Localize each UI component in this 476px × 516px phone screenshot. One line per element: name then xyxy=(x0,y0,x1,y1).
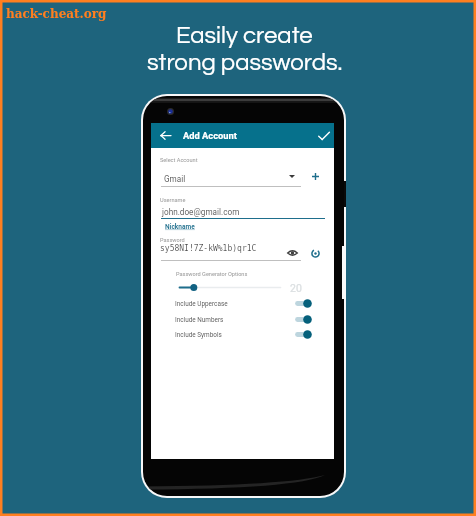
staticText: Password xyxy=(160,237,185,244)
staticText: Easily create xyxy=(176,23,313,48)
button[interactable]: Include Symbols xyxy=(151,327,334,342)
button[interactable]: Nickname xyxy=(165,223,195,231)
staticText: hack-cheat.org xyxy=(6,7,107,21)
staticText: sy58NI!7Z-kW%1b)qr1C xyxy=(160,244,257,253)
button[interactable]: Save xyxy=(315,127,332,144)
button[interactable]: Show password xyxy=(283,245,299,261)
button[interactable]: Include Numbers xyxy=(151,312,334,327)
staticText: Select Account xyxy=(160,157,198,164)
staticText: john.doe@gmail.com xyxy=(162,207,240,217)
staticText: Include Numbers xyxy=(175,316,224,324)
button[interactable]: Include Uppercase xyxy=(151,296,334,311)
button[interactable]: Regenerate password xyxy=(306,246,322,262)
staticText: Include Symbols xyxy=(175,331,222,339)
staticText: Gmail xyxy=(164,174,186,184)
button[interactable]: Password length xyxy=(176,282,281,294)
button[interactable]: Add account xyxy=(306,170,322,186)
staticText: Password Generator Options xyxy=(176,271,248,278)
staticText: Include Uppercase xyxy=(175,300,228,308)
staticText: Username xyxy=(160,197,186,204)
button[interactable]: Back xyxy=(157,127,174,144)
staticText: Add Account xyxy=(183,130,237,141)
staticText: strong passwords. xyxy=(147,50,343,75)
staticText: 20 xyxy=(290,282,302,294)
